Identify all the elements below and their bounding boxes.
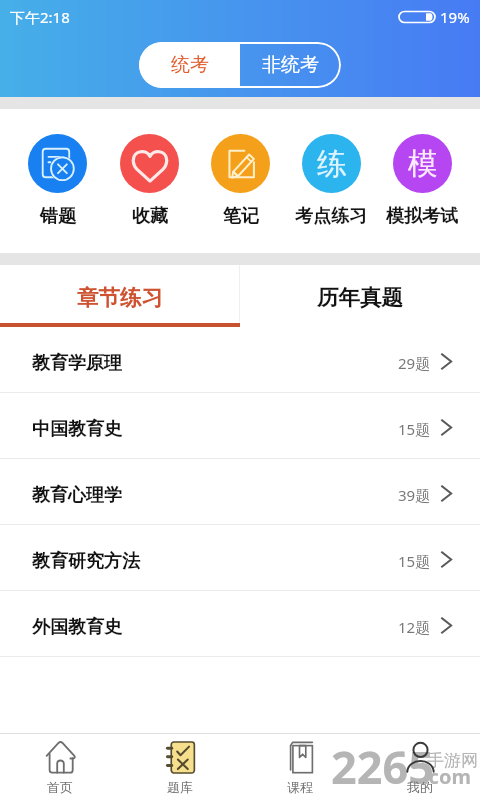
staticText: 笔记 (223, 205, 259, 228)
button[interactable]: 首页 (0, 734, 120, 800)
staticText: 章节练习 (77, 284, 163, 311)
staticText: 29题 (398, 353, 431, 373)
staticText: 非统考 (262, 53, 319, 77)
staticText: 教育研究方法 (32, 550, 140, 573)
button[interactable]: 错题 (11, 134, 103, 244)
staticText: 练 (317, 145, 347, 183)
staticText: 题库 (167, 779, 193, 795)
staticText: 课程 (287, 779, 313, 795)
staticText: 考点练习 (295, 205, 367, 228)
staticText: 手游网 (427, 750, 478, 771)
staticText: 教育学原理 (32, 352, 122, 375)
staticText: 收藏 (132, 205, 168, 228)
staticText: 历年真题 (317, 284, 403, 311)
staticText: 15题 (398, 551, 431, 571)
staticText: 模拟考试 (386, 205, 458, 228)
staticText: 外国教育史 (32, 616, 122, 639)
staticText: 19% (440, 7, 470, 27)
button[interactable]: 历年真题 (240, 265, 480, 327)
button[interactable]: 课程 (240, 734, 360, 800)
staticText: 39题 (398, 485, 431, 505)
button[interactable]: 教育研究方法 (0, 525, 480, 590)
staticText: 12题 (398, 617, 431, 637)
button[interactable]: 中国教育史 (0, 393, 480, 458)
button[interactable]: 章节练习 (0, 265, 239, 327)
button[interactable]: 教育心理学 (0, 459, 480, 524)
button[interactable]: 教育学原理 (0, 327, 480, 392)
button[interactable]: 练 (285, 134, 377, 244)
button[interactable]: 模 (376, 134, 468, 244)
button[interactable]: 题库 (120, 734, 240, 800)
staticText: 统考 (171, 53, 209, 77)
staticText: 2265 (331, 736, 434, 797)
staticText: 模 (408, 145, 438, 183)
staticText: 中国教育史 (32, 418, 122, 441)
staticText: 我的 (407, 779, 433, 795)
button[interactable]: 外国教育史 (0, 591, 480, 656)
staticText: 15题 (398, 419, 431, 439)
staticText: 错题 (40, 205, 76, 228)
staticText: 首页 (47, 779, 73, 795)
staticText: 下午2:18 (10, 7, 70, 27)
button[interactable]: 非统考 (240, 42, 341, 88)
button[interactable]: 我的 (360, 734, 480, 800)
button[interactable]: 收藏 (103, 134, 195, 244)
staticText: 教育心理学 (32, 484, 122, 507)
staticText: .com (423, 763, 471, 790)
button[interactable]: 笔记 (194, 134, 286, 244)
button[interactable]: 统考 (139, 42, 240, 88)
